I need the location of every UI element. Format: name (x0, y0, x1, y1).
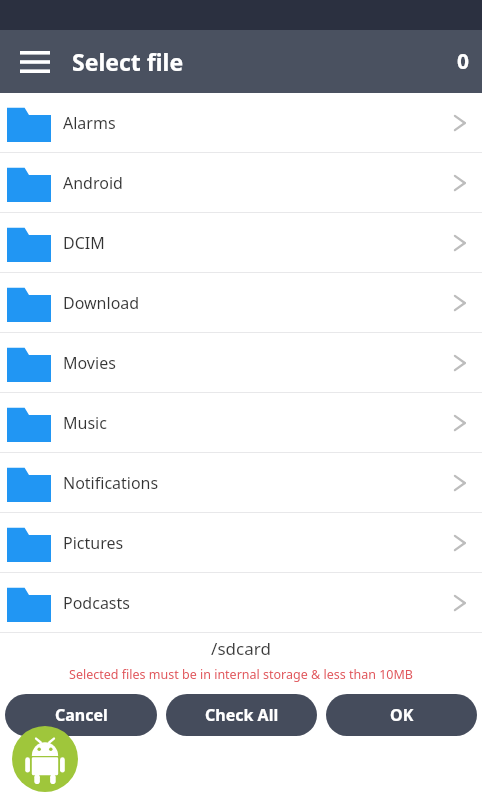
staticText: OK (390, 704, 414, 726)
staticText: Android (63, 172, 123, 194)
staticText: Pictures (63, 532, 124, 554)
button[interactable]: Podcasts (0, 573, 482, 633)
staticText: Notifications (63, 472, 159, 494)
staticText: Select file (72, 46, 184, 77)
button[interactable]: Cancel (5, 694, 157, 736)
button[interactable]: Movies (0, 333, 482, 393)
staticText: Selected files must be in internal stora… (0, 666, 482, 683)
staticText: DCIM (63, 232, 105, 254)
button[interactable]: Open navigation menu (12, 39, 58, 85)
staticText: Alarms (63, 112, 116, 134)
button[interactable]: 0 (457, 47, 470, 76)
staticText: Podcasts (63, 592, 130, 614)
staticText: Check All (205, 704, 279, 726)
staticText: Music (63, 412, 107, 434)
button[interactable]: Alarms (0, 93, 482, 153)
staticText: Download (63, 292, 140, 314)
staticText: Movies (63, 352, 116, 374)
button[interactable]: Download (0, 273, 482, 333)
staticText: /sdcard (0, 637, 482, 660)
button[interactable]: Pictures (0, 513, 482, 573)
button[interactable]: OK (326, 694, 477, 736)
button[interactable]: Check All (166, 694, 317, 736)
staticText: Cancel (55, 704, 108, 726)
staticText: 0 (457, 47, 470, 76)
button[interactable]: Android assistant (12, 726, 78, 792)
button[interactable]: Notifications (0, 453, 482, 513)
button[interactable]: Android (0, 153, 482, 213)
button[interactable]: Music (0, 393, 482, 453)
button[interactable]: DCIM (0, 213, 482, 273)
